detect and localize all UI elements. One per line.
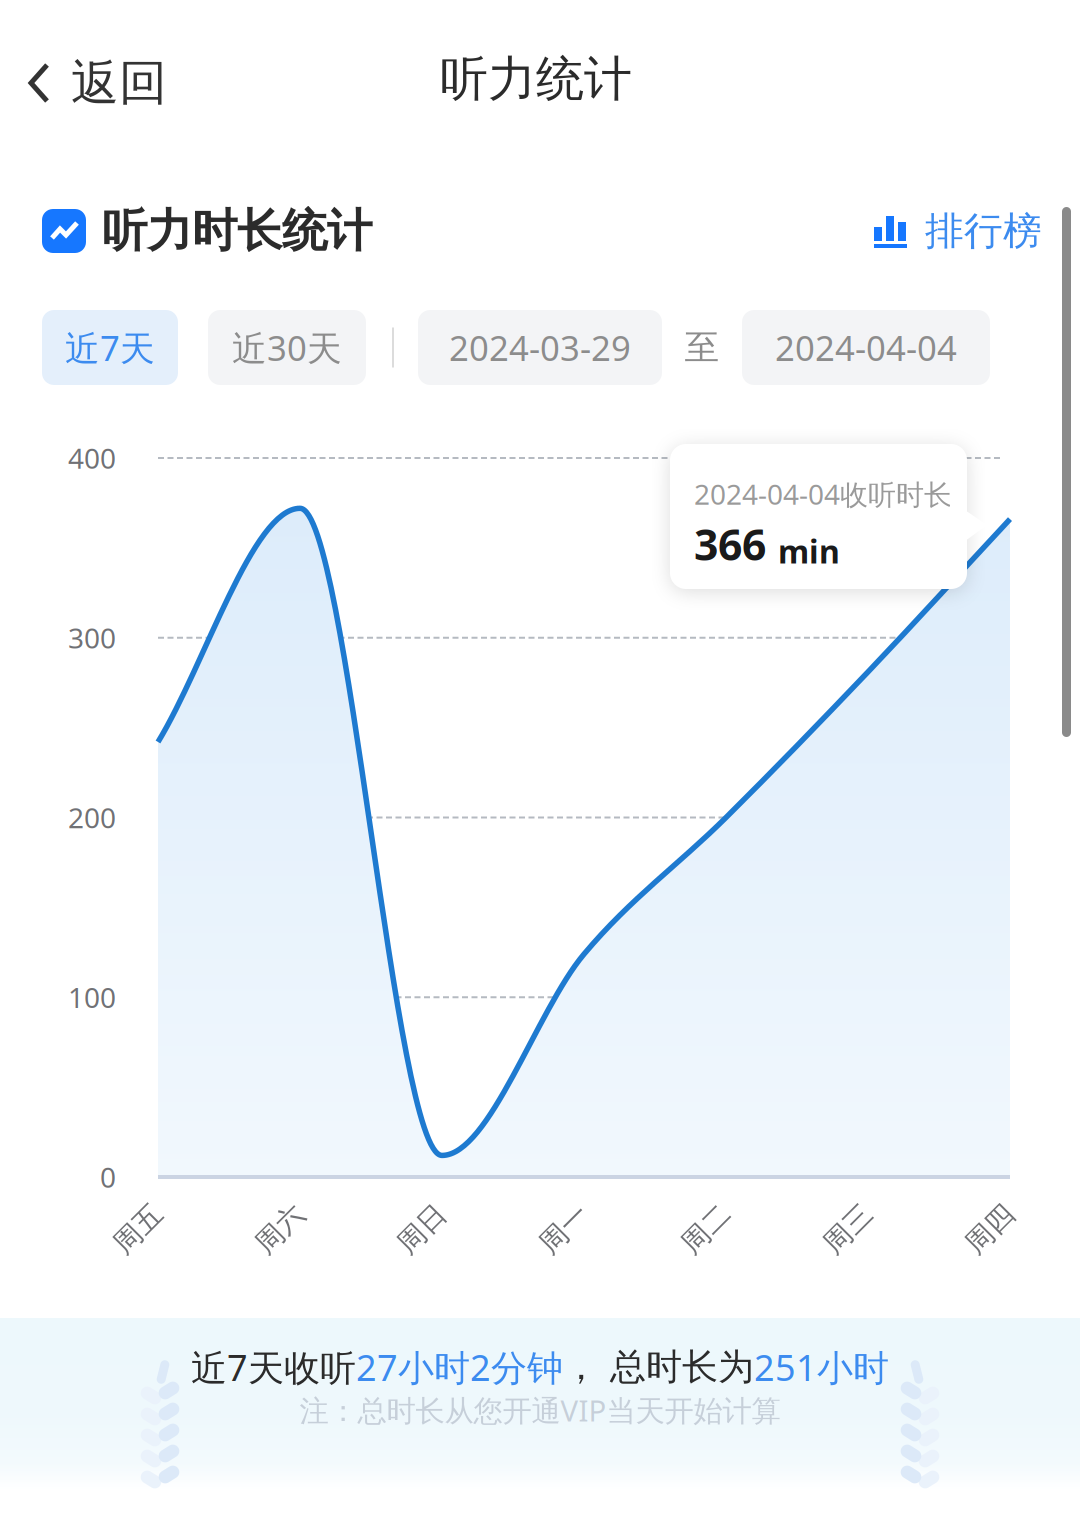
button[interactable]: 排行榜	[874, 209, 1042, 253]
staticText: 366	[694, 516, 766, 572]
staticText: 至	[684, 326, 719, 369]
staticText: 注：总时长从您开通VIP当天开始计算	[299, 1390, 780, 1429]
staticText: 总时长为	[599, 1345, 754, 1389]
staticText: 100	[68, 979, 116, 1016]
staticText: 200	[68, 799, 116, 836]
staticText: 排行榜	[925, 207, 1042, 255]
button[interactable]: 返回	[0, 40, 185, 126]
staticText: 2024-03-29	[449, 324, 631, 370]
staticText: min	[778, 530, 840, 572]
staticText: 周六	[252, 1212, 308, 1246]
staticText: 400	[68, 439, 116, 477]
staticText: 周日	[394, 1212, 450, 1246]
staticText: 周四	[962, 1212, 1018, 1246]
staticText: 周五	[110, 1212, 166, 1246]
staticText: 2024-04-04收听时长	[694, 475, 952, 513]
staticText: 0	[100, 1158, 116, 1196]
staticText: 2024-04-04	[775, 324, 957, 370]
button[interactable]: 近30天	[208, 310, 366, 385]
staticText: 周一	[536, 1212, 592, 1246]
staticText: 周二	[678, 1212, 734, 1246]
staticText: 返回	[71, 53, 167, 112]
staticText: 27小时2分钟	[356, 1343, 563, 1391]
button[interactable]: 2024-04-04	[742, 310, 990, 385]
staticText: 听力统计	[440, 49, 632, 108]
staticText: 300	[68, 619, 116, 656]
staticText: 近7天收听	[191, 1343, 356, 1391]
staticText: 近7天	[65, 324, 155, 370]
button[interactable]: 2024-03-29	[418, 310, 662, 385]
staticText: 251小时	[754, 1343, 889, 1391]
staticText: 周三	[820, 1212, 876, 1246]
staticText: 听力时长统计	[102, 203, 372, 259]
staticText: ，	[563, 1345, 599, 1389]
staticText: 近30天	[232, 324, 342, 370]
button[interactable]: 近7天	[42, 310, 178, 385]
